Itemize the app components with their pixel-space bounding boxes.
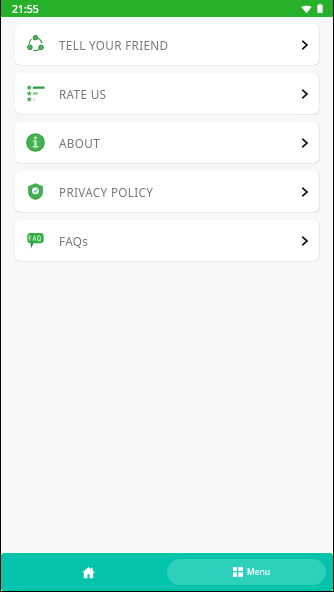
button[interactable]: TELL YOUR FRIEND bbox=[15, 24, 319, 65]
button[interactable]: RATE US bbox=[15, 73, 319, 114]
button[interactable]: ABOUT bbox=[15, 122, 319, 163]
staticText: Menu bbox=[247, 566, 271, 578]
staticText: PRIVACY POLICY bbox=[59, 184, 154, 200]
button[interactable]: FAQs bbox=[15, 220, 319, 261]
button[interactable]: Menu bbox=[167, 559, 326, 585]
staticText: ABOUT bbox=[59, 135, 100, 151]
button[interactable]: PRIVACY POLICY bbox=[15, 171, 319, 212]
button[interactable]: Home bbox=[1, 553, 167, 591]
staticText: TELL YOUR FRIEND bbox=[59, 37, 169, 53]
staticText: FAQs bbox=[59, 233, 89, 249]
staticText: 21:55 bbox=[12, 2, 39, 16]
staticText: RATE US bbox=[59, 86, 107, 102]
